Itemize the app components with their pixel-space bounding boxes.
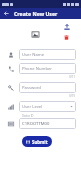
button[interactable]: Back: [2, 9, 11, 18]
button[interactable]: Password: [19, 82, 76, 93]
button[interactable]: User Level: [19, 101, 76, 112]
staticText: Password: [22, 85, 41, 91]
button[interactable]: User Name: [19, 49, 76, 60]
button[interactable]: Submit: [22, 136, 52, 147]
button[interactable]: Phone Number: [19, 63, 76, 74]
button[interactable]: Delete image: [63, 34, 70, 41]
button[interactable]: C1ROOTTM00: [19, 118, 76, 129]
staticText: User Level: [22, 104, 43, 110]
button[interactable]: Profile image: [31, 30, 39, 38]
staticText: 0/11: [69, 75, 75, 79]
staticText: User Name: [22, 52, 45, 58]
staticText: Create New User: [14, 10, 58, 17]
button[interactable]: Upload image: [63, 23, 70, 30]
staticText: C1ROOTTM00: [22, 121, 50, 127]
staticText: 0/15: [69, 94, 75, 98]
staticText: Device ID: [22, 114, 34, 118]
staticText: Phone Number: [22, 66, 53, 72]
staticText: Submit: [32, 139, 48, 145]
